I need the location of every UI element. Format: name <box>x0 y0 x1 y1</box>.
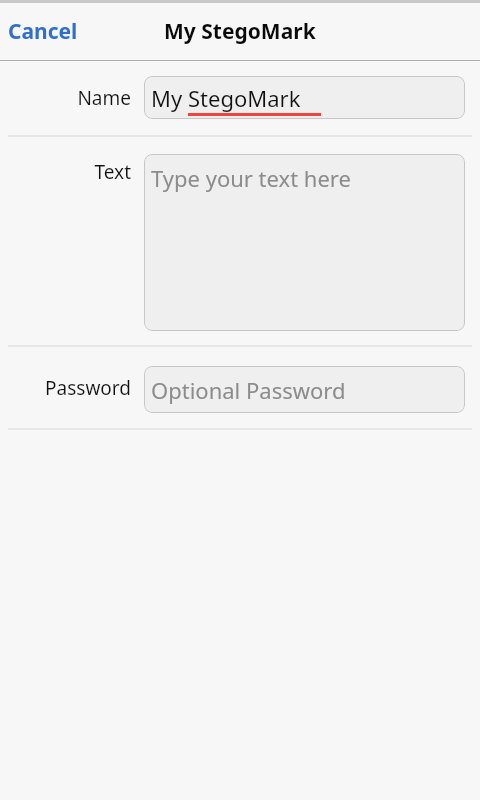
staticText: Optional Password <box>151 375 346 405</box>
staticText: My <box>151 83 188 113</box>
staticText: Text <box>94 159 131 185</box>
staticText: StegoMark <box>188 83 301 113</box>
button[interactable]: Cancel <box>8 13 78 50</box>
button[interactable]: Type your text here <box>144 154 465 331</box>
staticText: Name <box>77 85 131 111</box>
staticText: Password <box>45 375 131 401</box>
staticText: My StegoMark <box>164 17 316 46</box>
staticText: Cancel <box>8 17 78 46</box>
button[interactable]: Optional Password <box>144 366 465 413</box>
button[interactable]: My <box>144 76 465 119</box>
staticText: Type your text here <box>151 163 351 193</box>
